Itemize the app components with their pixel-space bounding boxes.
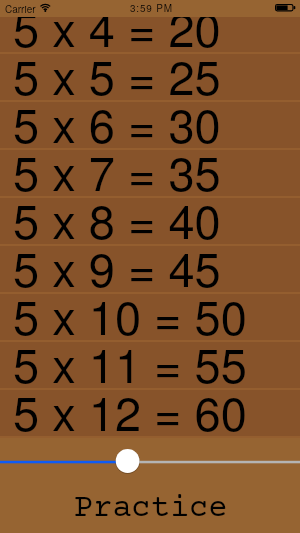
staticText: Carrier	[5, 2, 36, 16]
button[interactable]: 5 x 9 = 45	[0, 246, 300, 294]
staticText: 5 x 10 = 50	[13, 281, 247, 348]
staticText: 5 x 5 = 25	[13, 41, 221, 108]
other: Wi-Fi	[41, 4, 50, 12]
button[interactable]: 5 x 12 = 60	[0, 390, 300, 438]
staticText: 5 x 8 = 40	[13, 185, 221, 252]
button[interactable]: Practice	[0, 491, 300, 533]
button[interactable]: 5 x 10 = 50	[0, 294, 300, 342]
staticText: 5 x 11 = 55	[13, 329, 247, 396]
button[interactable]: 5 x 5 = 25	[0, 54, 300, 102]
staticText: 5 x 6 = 30	[13, 89, 221, 156]
button[interactable]: 5 x 7 = 35	[0, 150, 300, 198]
button[interactable]: 5 x 4 = 20	[0, 6, 300, 54]
staticText: 5 x 9 = 45	[13, 233, 221, 300]
staticText: Practice	[74, 491, 228, 527]
other: Battery	[275, 4, 296, 12]
staticText: 3:59 PM	[130, 1, 173, 15]
staticText: 5 x 7 = 35	[13, 137, 221, 204]
button[interactable]: 5 x 8 = 40	[0, 198, 300, 246]
staticText: 5 x 12 = 60	[13, 377, 247, 444]
button[interactable]: 5 x 11 = 55	[0, 342, 300, 390]
button[interactable]: Times table selector	[0, 447, 300, 477]
button[interactable]: 5 x 6 = 30	[0, 102, 300, 150]
staticText: 5 x 4 = 20	[13, 0, 221, 60]
